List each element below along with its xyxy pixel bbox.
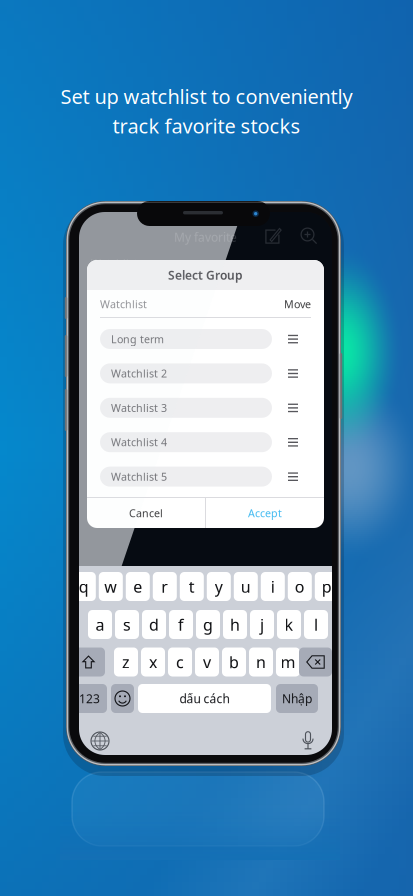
staticText: Watchlist 2	[111, 366, 167, 380]
staticText: n	[256, 651, 266, 673]
button[interactable]: 123	[72, 684, 107, 713]
button[interactable]: Dictation	[300, 730, 316, 751]
staticText: u	[241, 576, 251, 597]
staticText: a	[95, 614, 104, 635]
button[interactable]: Accept	[206, 498, 324, 528]
staticText: t	[189, 576, 195, 597]
staticText: i	[271, 576, 275, 597]
button[interactable]: Shift	[72, 647, 105, 676]
staticText: b	[229, 651, 239, 673]
button[interactable]: d	[142, 610, 166, 639]
staticText: Watchlist	[91, 256, 138, 270]
button[interactable]: Reorder	[288, 369, 298, 378]
button[interactable]: b	[222, 647, 246, 676]
staticText: m	[280, 651, 295, 673]
button[interactable]: Watchlist 3	[100, 398, 272, 418]
button[interactable]: j	[250, 610, 274, 639]
button[interactable]: m	[276, 647, 300, 676]
button[interactable]: Move	[284, 297, 311, 311]
staticText: Long term	[111, 332, 164, 346]
button[interactable]: l	[304, 610, 328, 639]
staticText: d	[149, 614, 159, 635]
button[interactable]: x	[141, 647, 165, 676]
button[interactable]: c	[168, 647, 192, 676]
staticText: e	[133, 576, 142, 597]
button[interactable]: Reorder	[288, 438, 298, 447]
staticText: x	[149, 651, 157, 673]
staticText: r	[161, 576, 168, 597]
button[interactable]: k	[277, 610, 301, 639]
button[interactable]: Watchlist 5	[100, 467, 272, 487]
button[interactable]: v	[195, 647, 219, 676]
button[interactable]: y	[207, 572, 231, 601]
button[interactable]: g	[196, 610, 220, 639]
button[interactable]: u	[234, 572, 258, 601]
staticText: Move	[284, 297, 311, 311]
staticText: dấu cách	[179, 690, 229, 706]
button[interactable]: s	[115, 610, 139, 639]
staticText: l	[314, 614, 318, 635]
button[interactable]: Reorder	[288, 472, 298, 481]
staticText: c	[176, 651, 184, 673]
button[interactable]: Watchlist 4	[100, 432, 272, 452]
button[interactable]: w	[99, 572, 123, 601]
staticText: My favorite	[174, 229, 237, 245]
button[interactable]: Long term	[100, 329, 272, 349]
staticText: 123	[79, 690, 100, 706]
staticText: Nhập	[282, 690, 312, 706]
button[interactable]: Reorder	[288, 335, 298, 344]
staticText: v	[203, 651, 211, 673]
staticText: Watchlist	[100, 297, 147, 311]
staticText: p	[322, 576, 332, 597]
button[interactable]: i	[261, 572, 285, 601]
button[interactable]: f	[169, 610, 193, 639]
staticText: Select Group	[168, 267, 243, 283]
button[interactable]: Search	[294, 224, 324, 248]
button[interactable]: t	[180, 572, 204, 601]
staticText: h	[230, 614, 240, 635]
button[interactable]: q	[72, 572, 96, 601]
staticText: f	[178, 614, 184, 635]
staticText: z	[122, 651, 130, 673]
button[interactable]: dấu cách	[138, 684, 271, 713]
staticText: Cancel	[129, 506, 163, 520]
button[interactable]: Nhập	[276, 684, 318, 713]
staticText: k	[284, 614, 293, 635]
staticText: w	[104, 576, 117, 597]
staticText: j	[260, 614, 264, 635]
button[interactable]: Watchlist 2	[100, 363, 272, 383]
button[interactable]: n	[249, 647, 273, 676]
button[interactable]: p	[315, 572, 339, 601]
staticText: y	[215, 576, 223, 597]
button[interactable]: e	[126, 572, 150, 601]
staticText: o	[295, 576, 305, 597]
staticText: Watchlist 4	[111, 435, 167, 449]
staticText: track favorite stocks	[112, 112, 300, 139]
staticText: Watchlist 3	[111, 401, 167, 415]
button[interactable]: Next keyboard	[91, 732, 109, 750]
staticText: Watchlist 5	[111, 469, 167, 484]
staticText: s	[123, 614, 131, 635]
button[interactable]: h	[223, 610, 247, 639]
staticText: q	[79, 576, 89, 597]
button[interactable]: Cancel	[87, 498, 205, 528]
button[interactable]: Reorder	[288, 403, 298, 412]
staticText: g	[203, 614, 213, 635]
staticText: Accept	[248, 506, 282, 520]
button[interactable]: Delete	[299, 647, 332, 676]
staticText: Set up watchlist to conveniently	[60, 83, 352, 109]
button[interactable]: a	[88, 610, 112, 639]
button[interactable]: New watchlist	[258, 224, 288, 248]
button[interactable]: r	[153, 572, 177, 601]
button[interactable]: Emoji	[111, 684, 134, 713]
button[interactable]: z	[114, 647, 138, 676]
button[interactable]: o	[288, 572, 312, 601]
